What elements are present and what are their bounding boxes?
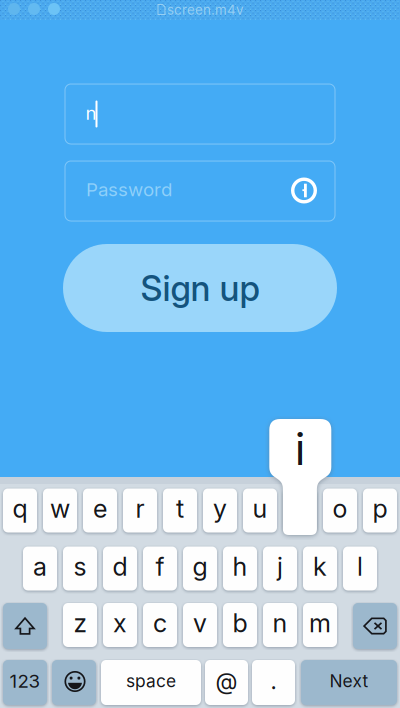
button[interactable]: b bbox=[223, 603, 257, 647]
staticText: x bbox=[113, 608, 127, 638]
staticText: . bbox=[270, 667, 276, 695]
staticText: v bbox=[193, 608, 207, 638]
staticText: o bbox=[332, 493, 347, 524]
button[interactable]: h bbox=[223, 546, 257, 590]
button[interactable]: Zoom bbox=[48, 3, 60, 15]
button[interactable]: x bbox=[103, 603, 137, 647]
staticText: r bbox=[135, 493, 144, 524]
staticText: b bbox=[232, 608, 247, 638]
staticText: n bbox=[85, 102, 96, 124]
staticText: Next bbox=[329, 670, 368, 691]
staticText: i bbox=[295, 422, 306, 476]
button[interactable]: j bbox=[263, 546, 297, 590]
staticText: z bbox=[73, 608, 86, 638]
button[interactable]: d bbox=[103, 546, 137, 590]
staticText: screen.m4v bbox=[167, 2, 243, 18]
button[interactable]: a bbox=[23, 546, 57, 590]
button[interactable]: Close bbox=[8, 3, 20, 15]
button[interactable]: m bbox=[303, 603, 337, 647]
button[interactable]: Emoji bbox=[52, 660, 96, 705]
staticText: space bbox=[126, 670, 176, 691]
button[interactable]: . bbox=[252, 660, 295, 705]
staticText: j bbox=[277, 551, 283, 582]
button[interactable]: o bbox=[323, 488, 357, 532]
staticText: q bbox=[12, 493, 27, 524]
staticText: k bbox=[313, 551, 327, 582]
staticText: h bbox=[232, 551, 247, 582]
button[interactable]: Password bbox=[65, 161, 335, 221]
staticText: f bbox=[155, 551, 164, 582]
button[interactable]: Username bbox=[65, 84, 335, 144]
staticText: 123 bbox=[9, 670, 40, 692]
button[interactable]: k bbox=[303, 546, 337, 590]
staticText: t bbox=[176, 493, 184, 524]
button[interactable]: Shift bbox=[3, 603, 47, 649]
staticText: l bbox=[357, 551, 363, 582]
button[interactable]: w bbox=[43, 488, 77, 532]
staticText: e bbox=[93, 493, 107, 524]
button[interactable]: Delete bbox=[353, 603, 397, 649]
staticText: d bbox=[112, 551, 127, 582]
button[interactable]: 123 bbox=[3, 660, 47, 705]
staticText: a bbox=[33, 551, 47, 582]
staticText: u bbox=[252, 493, 267, 524]
button[interactable]: v bbox=[183, 603, 217, 647]
button[interactable]: p bbox=[363, 488, 397, 532]
button[interactable]: c bbox=[143, 603, 177, 647]
button[interactable]: e bbox=[83, 488, 117, 532]
staticText: p bbox=[372, 493, 387, 524]
staticText: m bbox=[309, 608, 331, 638]
staticText: c bbox=[153, 608, 167, 638]
button[interactable]: Sign up bbox=[63, 244, 337, 332]
button[interactable]: s bbox=[63, 546, 97, 590]
button[interactable]: g bbox=[183, 546, 217, 590]
button[interactable]: u bbox=[243, 488, 277, 532]
staticText: g bbox=[192, 551, 207, 582]
button[interactable]: l bbox=[343, 546, 377, 590]
staticText: Sign up bbox=[140, 267, 259, 309]
button[interactable]: Next bbox=[301, 660, 397, 705]
staticText: @ bbox=[215, 667, 237, 695]
button[interactable]: q bbox=[3, 488, 37, 532]
staticText: Password bbox=[86, 178, 172, 201]
button[interactable]: t bbox=[163, 488, 197, 532]
button[interactable]: r bbox=[123, 488, 157, 532]
button[interactable]: @ bbox=[205, 660, 248, 705]
button[interactable]: Minimize bbox=[28, 3, 40, 15]
staticText: n bbox=[272, 608, 287, 638]
button[interactable]: y bbox=[203, 488, 237, 532]
button[interactable]: n bbox=[263, 603, 297, 647]
button[interactable]: 1Password bbox=[291, 177, 317, 203]
staticText: y bbox=[213, 493, 227, 524]
button[interactable]: z bbox=[63, 603, 97, 647]
staticText: s bbox=[73, 551, 86, 582]
button[interactable]: f bbox=[143, 546, 177, 590]
button[interactable]: space bbox=[101, 660, 201, 705]
staticText: w bbox=[50, 493, 70, 524]
